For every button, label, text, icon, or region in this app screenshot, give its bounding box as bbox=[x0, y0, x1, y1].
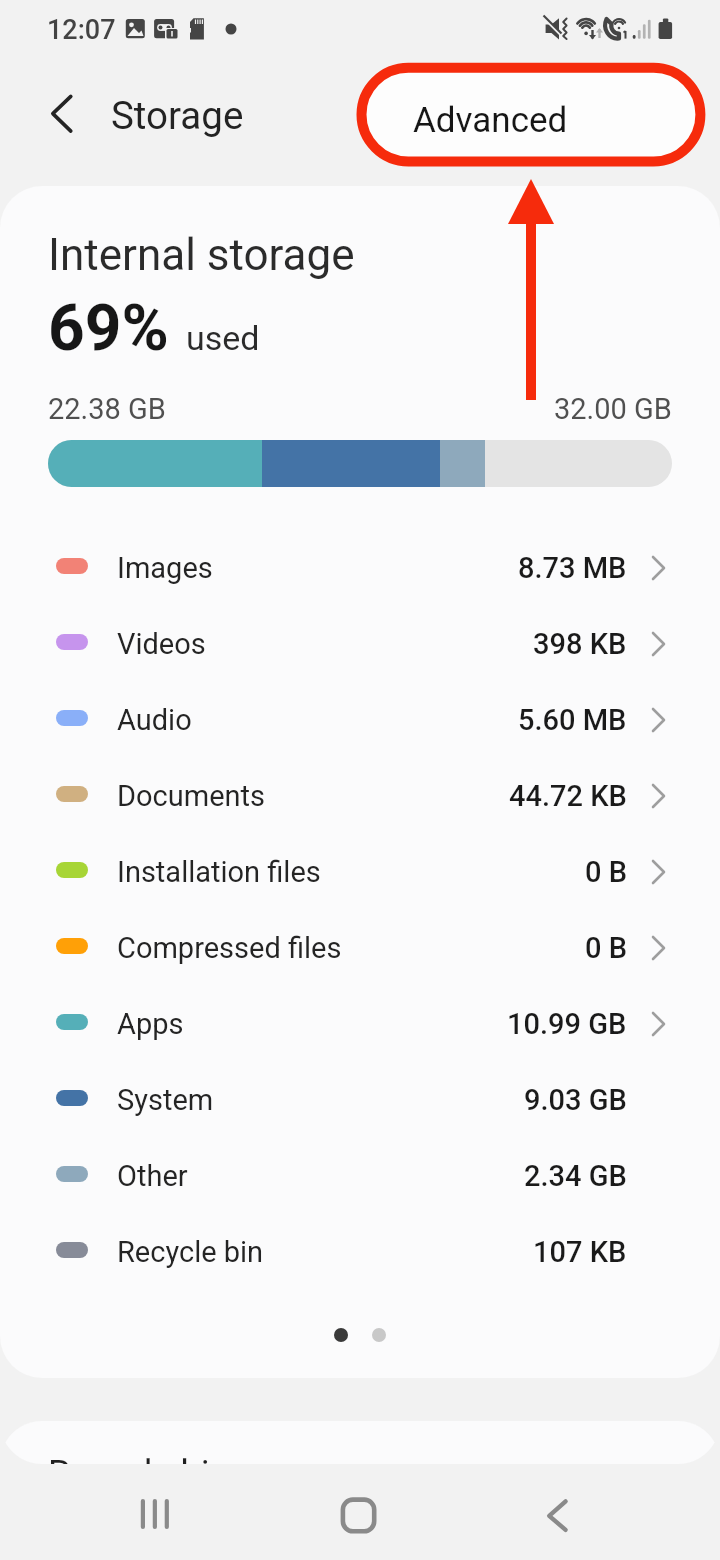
staticText: Other bbox=[117, 1159, 188, 1193]
staticText: 398 KB bbox=[533, 627, 627, 661]
staticText: 0 B bbox=[585, 931, 627, 965]
staticText: Advanced bbox=[413, 100, 568, 141]
button[interactable]: Recycle bin bbox=[0, 1421, 720, 1464]
staticText: 8.73 MB bbox=[518, 551, 627, 585]
staticText: Images bbox=[117, 551, 213, 585]
staticText: 22.38 GB bbox=[48, 392, 166, 426]
button[interactable]: Apps bbox=[0, 986, 720, 1062]
staticText: System bbox=[117, 1083, 214, 1117]
button[interactable]: Recent apps bbox=[107, 1475, 203, 1547]
button[interactable]: Documents bbox=[0, 758, 720, 834]
staticText: 69% bbox=[48, 291, 169, 366]
button[interactable]: Images bbox=[0, 530, 720, 606]
button[interactable]: System bbox=[0, 1062, 720, 1138]
staticText: Recycle bin bbox=[48, 1453, 230, 1495]
staticText: Storage bbox=[111, 93, 244, 138]
button[interactable]: Advanced bbox=[363, 69, 702, 160]
staticText: 12:07 bbox=[47, 14, 116, 46]
button[interactable]: Videos bbox=[0, 606, 720, 682]
staticText: 107 KB bbox=[533, 1235, 627, 1269]
staticText: Internal storage bbox=[48, 229, 355, 281]
button[interactable]: Recycle bin bbox=[0, 1214, 720, 1290]
button[interactable]: Back bbox=[28, 80, 96, 148]
button[interactable]: Installation files bbox=[0, 834, 720, 910]
staticText: 10.99 GB bbox=[507, 1007, 627, 1041]
staticText: Installation files bbox=[117, 855, 321, 889]
staticText: Videos bbox=[117, 627, 206, 661]
staticText: used bbox=[186, 318, 260, 358]
staticText: Apps bbox=[117, 1007, 184, 1041]
staticText: 2.34 GB bbox=[524, 1159, 627, 1193]
button[interactable]: Home bbox=[308, 1475, 404, 1547]
staticText: Audio bbox=[117, 703, 192, 737]
staticText: Recycle bin bbox=[117, 1235, 264, 1269]
button[interactable]: Other bbox=[0, 1138, 720, 1214]
staticText: 5.60 MB bbox=[518, 703, 627, 737]
staticText: 9.03 GB bbox=[524, 1083, 627, 1117]
staticText: 44.72 KB bbox=[509, 779, 627, 813]
staticText: Compressed files bbox=[117, 931, 342, 965]
staticText: 0 B bbox=[585, 855, 627, 889]
button[interactable]: Audio bbox=[0, 682, 720, 758]
button[interactable]: Compressed files bbox=[0, 910, 720, 986]
button[interactable]: Back bbox=[509, 1475, 605, 1547]
staticText: 32.00 GB bbox=[554, 392, 672, 426]
staticText: Documents bbox=[117, 779, 266, 813]
